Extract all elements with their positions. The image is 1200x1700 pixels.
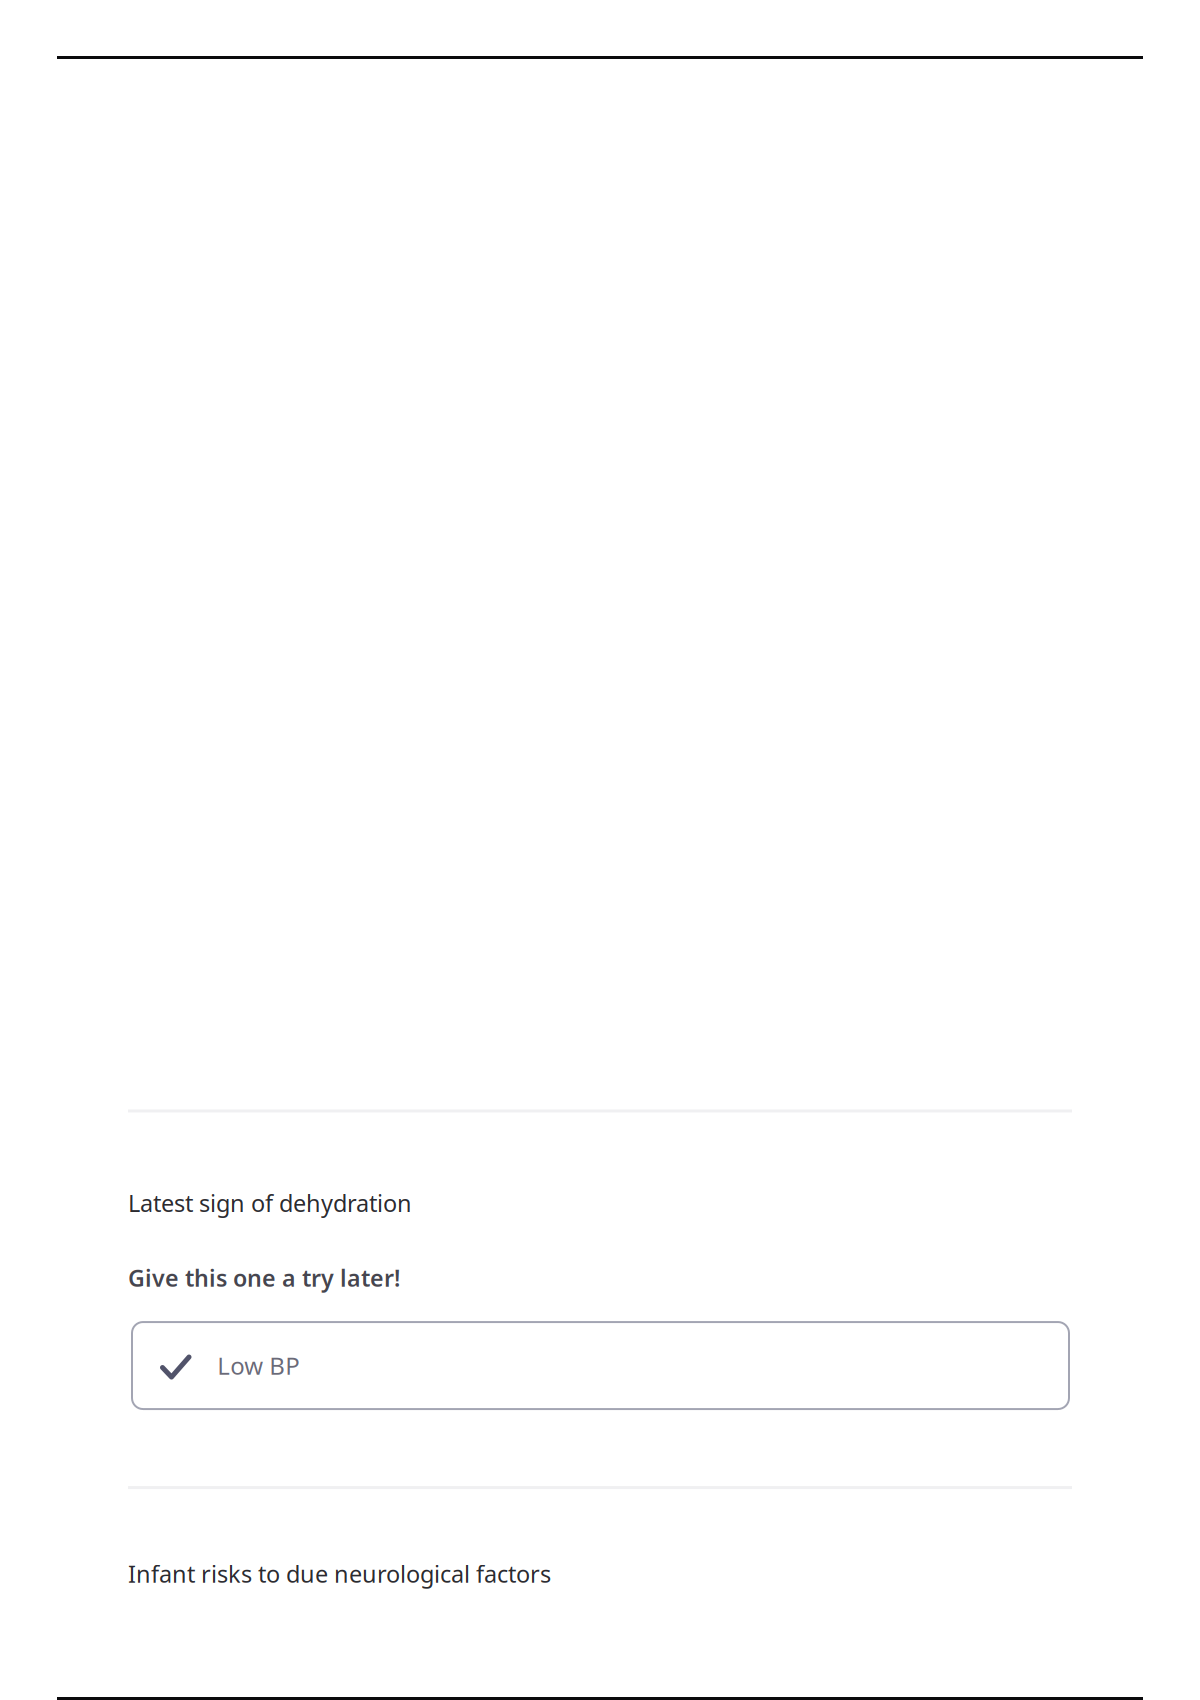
staticText: Give this one a try later! <box>128 1262 400 1293</box>
staticText: Infant risks to due neurological factors <box>128 1557 551 1589</box>
staticText: Low BP <box>217 1349 300 1382</box>
staticText: Latest sign of dehydration <box>128 1187 412 1219</box>
button[interactable]: Low BP <box>131 1321 1070 1410</box>
